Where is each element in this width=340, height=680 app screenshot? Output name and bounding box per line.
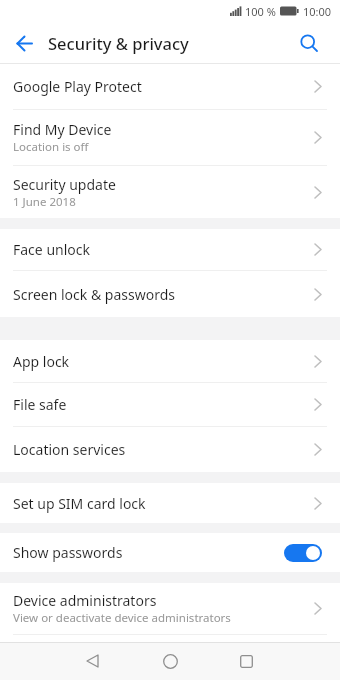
staticText: Security update <box>13 175 116 194</box>
button[interactable]: Face unlock <box>0 229 340 270</box>
button[interactable]: File safe <box>0 383 340 426</box>
staticText: 10:00 <box>303 4 332 19</box>
staticText: Show passwords <box>13 543 123 562</box>
staticText: Face unlock <box>13 240 90 259</box>
button[interactable]: App lock <box>0 340 340 382</box>
button[interactable]: Device administrators <box>0 583 340 634</box>
staticText: Google Play Protect <box>13 77 142 96</box>
staticText: Screen lock & passwords <box>13 285 175 304</box>
staticText: App lock <box>13 352 70 371</box>
button[interactable]: Find My Device <box>0 110 340 165</box>
staticText: Security & privacy <box>48 32 189 54</box>
staticText: 1 June 2018 <box>13 194 76 210</box>
button[interactable] <box>295 29 323 57</box>
button[interactable] <box>284 544 322 562</box>
staticText: Device administrators <box>13 591 157 610</box>
staticText: View or deactivate device administrators <box>13 610 231 626</box>
button[interactable]: Google Play Protect <box>0 64 340 109</box>
staticText: Set up SIM card lock <box>13 494 146 513</box>
button[interactable] <box>72 642 112 680</box>
staticText: Location is off <box>13 139 89 155</box>
staticText: Location services <box>13 440 126 459</box>
staticText: Find My Device <box>13 120 112 139</box>
staticText: 100 % <box>245 4 276 19</box>
button[interactable]: Security update <box>0 166 340 218</box>
button[interactable] <box>226 642 266 680</box>
staticText: File safe <box>13 395 67 414</box>
button[interactable] <box>10 29 38 57</box>
button[interactable]: Location services <box>0 427 340 472</box>
button[interactable]: Show passwords <box>0 533 340 572</box>
button[interactable]: Set up SIM card lock <box>0 483 340 523</box>
button[interactable]: Screen lock & passwords <box>0 271 340 317</box>
button[interactable] <box>150 642 190 680</box>
